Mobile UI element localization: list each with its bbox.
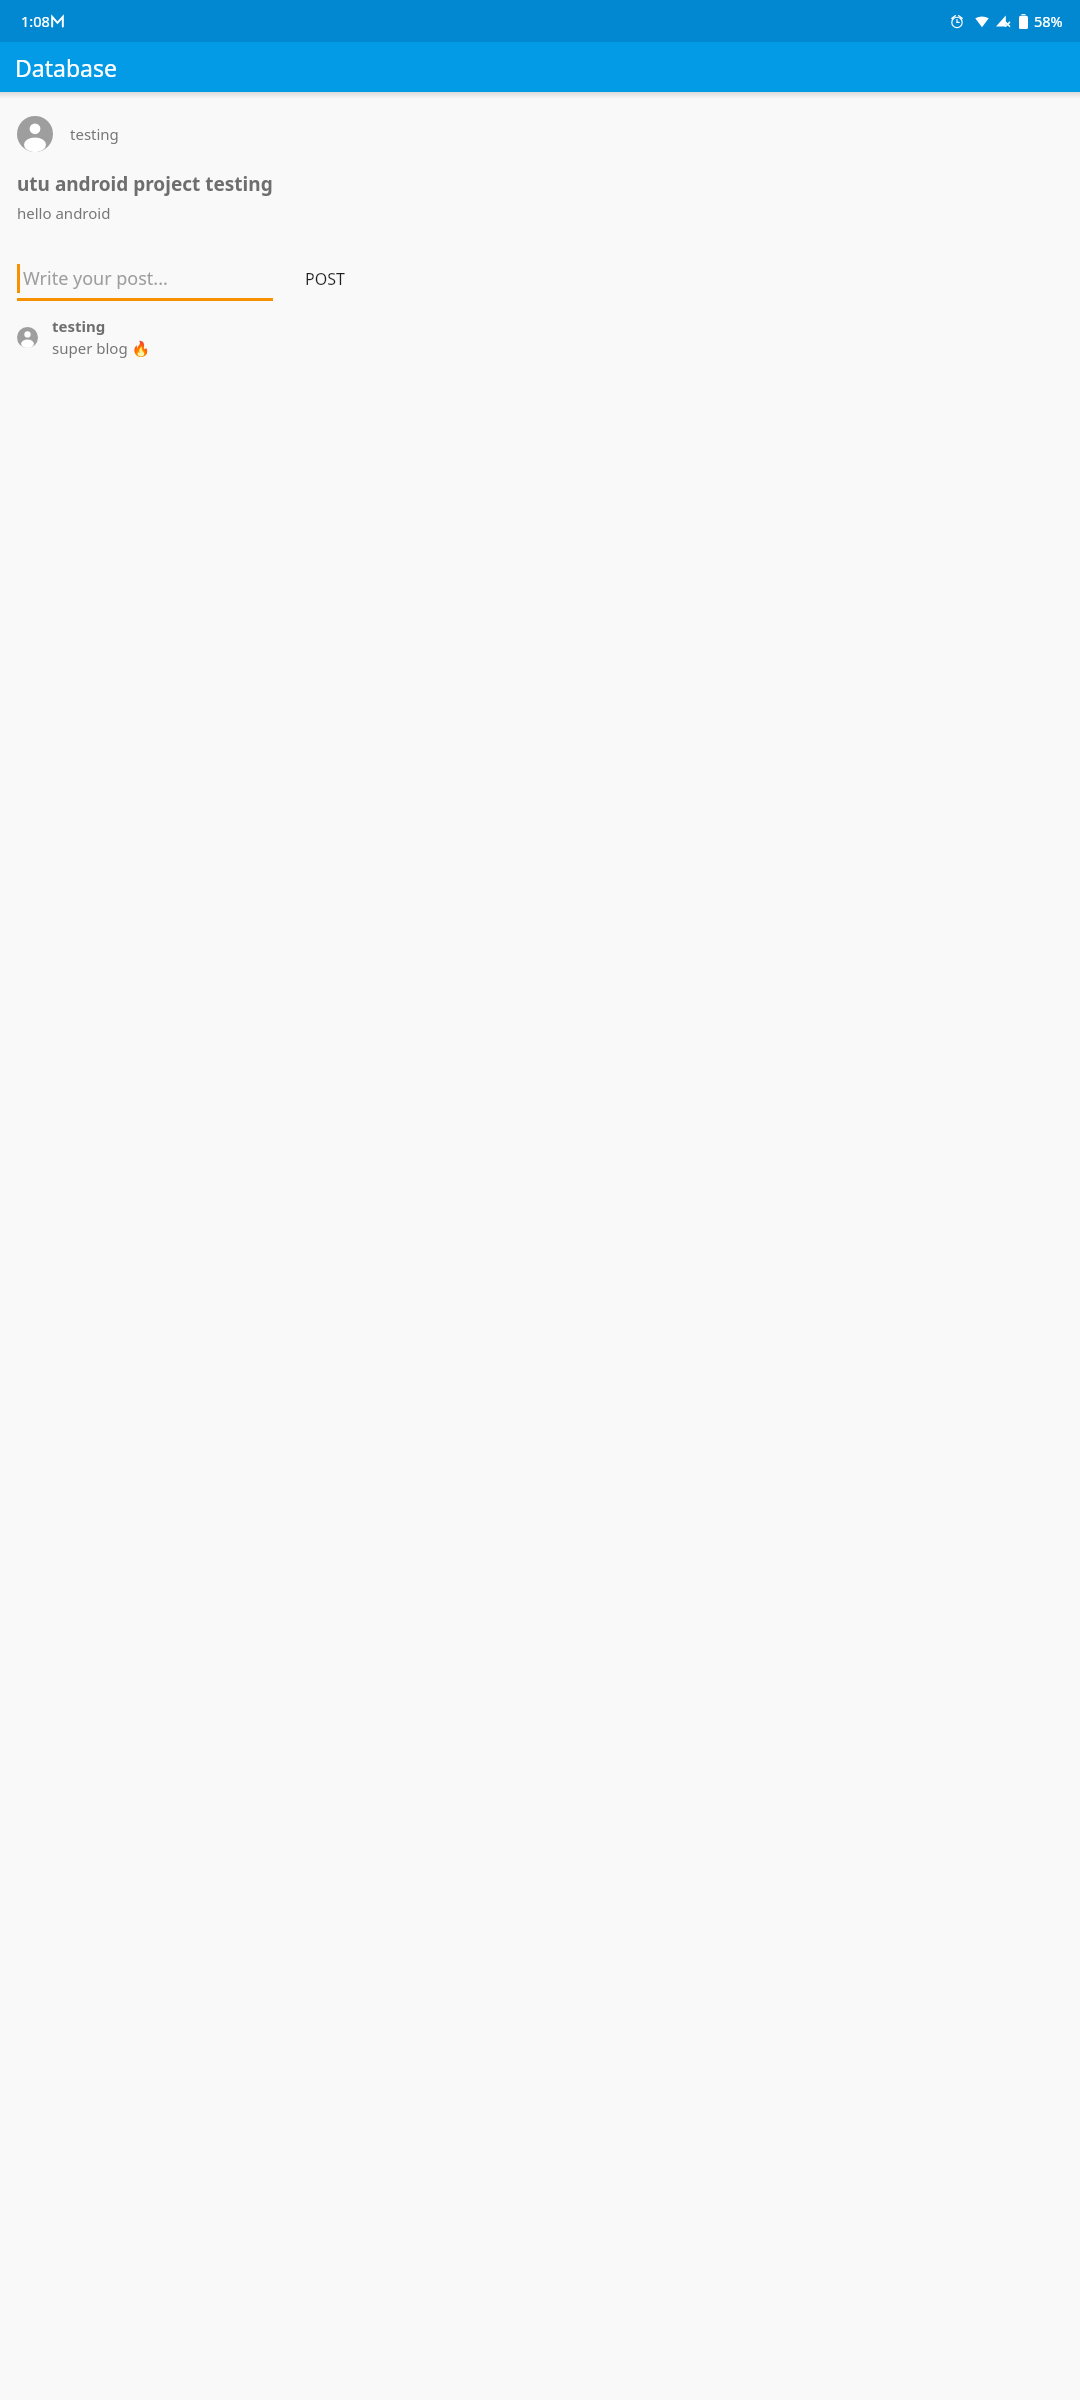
staticText: POST — [305, 268, 345, 290]
staticText: utu android project testing — [17, 171, 273, 197]
button[interactable]: POST — [293, 258, 357, 300]
staticText: super blog 🔥 — [52, 338, 151, 358]
staticText: 1:08 — [21, 11, 50, 31]
button[interactable]: testing — [0, 316, 1080, 358]
staticText: testing — [52, 316, 106, 336]
staticText: hello android — [17, 203, 111, 223]
staticText: Write your post... — [23, 266, 168, 291]
staticText: testing — [70, 124, 119, 144]
button[interactable]: Write your post — [17, 256, 273, 301]
staticText: Database — [15, 52, 117, 83]
staticText: 58% — [1034, 11, 1063, 31]
